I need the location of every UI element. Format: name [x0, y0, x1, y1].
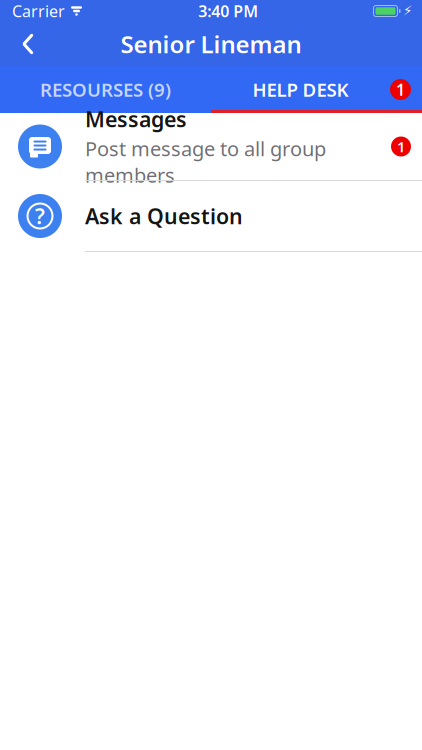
staticText: Post message to all group members: [85, 135, 326, 188]
staticText: 1: [397, 137, 405, 156]
staticText: Senior Lineman: [120, 28, 301, 60]
staticText: 3:40 PM: [198, 0, 258, 22]
button[interactable]: HELP DESK: [211, 66, 422, 113]
staticText: 1: [396, 79, 405, 100]
staticText: Messages: [85, 105, 187, 133]
staticText: RESOURSES (9): [40, 77, 171, 102]
button[interactable]: ?: [0, 181, 422, 251]
staticText: Carrier: [12, 0, 65, 22]
staticText: HELP DESK: [252, 77, 348, 102]
staticText: ⚡︎: [403, 3, 412, 18]
staticText: Ask a Question: [85, 202, 243, 230]
button[interactable]: Messages: [0, 113, 422, 180]
button[interactable]: RESOURSES (9): [0, 66, 211, 113]
staticText: ?: [35, 202, 45, 230]
button[interactable]: Back: [6, 22, 50, 66]
